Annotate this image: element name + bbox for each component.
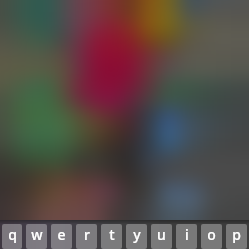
button[interactable]: r: [76, 224, 97, 249]
staticText: p: [232, 225, 241, 244]
button[interactable]: t: [101, 224, 122, 249]
staticText: o: [207, 225, 216, 244]
button[interactable]: q: [2, 224, 22, 249]
staticText: t: [109, 225, 115, 244]
button[interactable]: i: [176, 224, 197, 249]
button[interactable]: e: [51, 224, 72, 249]
staticText: e: [57, 225, 66, 244]
staticText: q: [8, 225, 17, 244]
button[interactable]: u: [151, 224, 172, 249]
button[interactable]: o: [201, 224, 222, 249]
button[interactable]: w: [26, 224, 47, 249]
button[interactable]: y: [126, 224, 147, 249]
staticText: y: [133, 225, 141, 244]
staticText: w: [31, 225, 43, 244]
staticText: u: [157, 225, 166, 244]
staticText: i: [185, 225, 189, 244]
staticText: r: [84, 225, 90, 244]
button[interactable]: p: [226, 224, 247, 249]
